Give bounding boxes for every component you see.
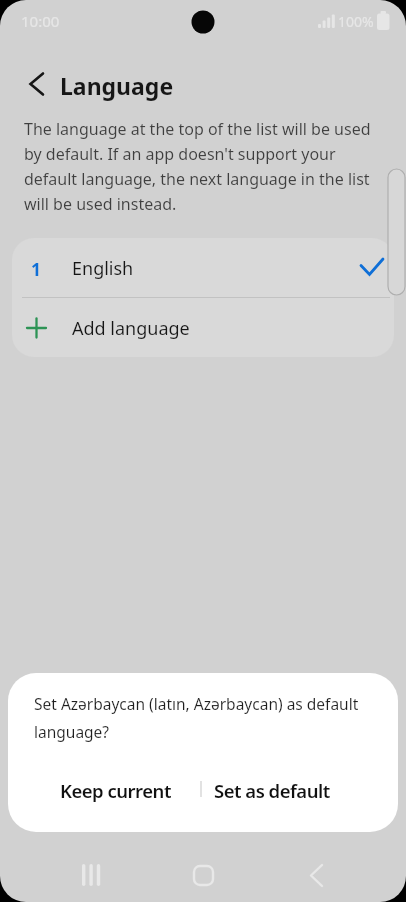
button[interactable]	[297, 856, 335, 894]
button[interactable]	[72, 856, 110, 894]
staticText: 10:00	[21, 11, 60, 31]
staticText: Language	[60, 70, 174, 101]
button[interactable]	[184, 856, 222, 894]
button[interactable]: Add language	[12, 297, 394, 357]
staticText: The language at the top of the list will…	[24, 118, 371, 214]
staticText: Keep current	[60, 778, 171, 803]
button[interactable]: 1	[12, 238, 394, 297]
staticText: 100%	[338, 12, 374, 31]
button[interactable]: Keep current	[45, 769, 185, 811]
staticText: Add language	[72, 316, 190, 341]
staticText: English	[72, 256, 134, 281]
staticText: 1	[31, 257, 42, 281]
staticText: Set as default	[214, 778, 330, 803]
button[interactable]: Set as default	[202, 769, 342, 811]
button[interactable]	[18, 64, 54, 104]
staticText: Set Azərbaycan (latın, Azərbaycan) as de…	[34, 693, 359, 743]
